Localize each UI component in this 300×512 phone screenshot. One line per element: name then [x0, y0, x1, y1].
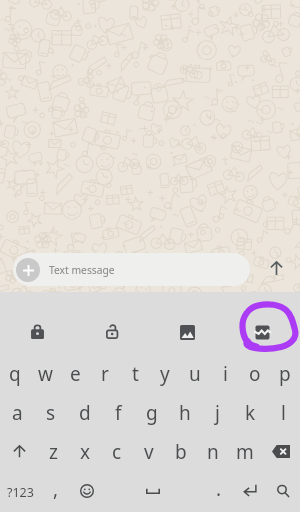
- button[interactable]: p: [270, 354, 300, 393]
- staticText: j: [215, 400, 220, 426]
- button[interactable]: e: [60, 354, 90, 393]
- button[interactable]: b: [165, 432, 197, 471]
- button[interactable]: .: [203, 471, 234, 510]
- staticText: ,: [53, 476, 59, 502]
- button[interactable]: a: [0, 393, 34, 432]
- staticText: k: [245, 400, 256, 426]
- staticText: d: [79, 400, 91, 426]
- button[interactable]: h: [168, 393, 201, 432]
- button[interactable]: g: [135, 393, 168, 432]
- staticText: f: [115, 400, 122, 426]
- button[interactable]: i: [210, 354, 240, 393]
- button[interactable]: Enter: [234, 471, 265, 510]
- button[interactable]: ,: [40, 471, 71, 510]
- staticText: v: [144, 439, 154, 465]
- staticText: b: [175, 439, 187, 465]
- button[interactable]: t: [120, 354, 150, 393]
- staticText: ?123: [7, 484, 34, 501]
- staticText: p: [279, 361, 291, 387]
- staticText: s: [46, 400, 56, 426]
- button[interactable]: n: [197, 432, 229, 471]
- button[interactable]: v: [133, 432, 165, 471]
- button[interactable]: Space: [102, 471, 203, 510]
- button[interactable]: q: [0, 354, 30, 393]
- button[interactable]: Attach: [16, 258, 40, 282]
- staticText: r: [101, 361, 109, 387]
- button[interactable]: Not encrypted: [75, 292, 150, 354]
- staticText: z: [49, 439, 58, 465]
- button[interactable]: u: [180, 354, 210, 393]
- staticText: u: [189, 361, 201, 387]
- button[interactable]: Broken image: [225, 292, 300, 354]
- button[interactable]: x: [69, 432, 101, 471]
- staticText: l: [281, 400, 286, 426]
- staticText: o: [249, 361, 261, 387]
- staticText: .: [216, 476, 222, 502]
- button[interactable]: l: [267, 393, 300, 432]
- button[interactable]: c: [101, 432, 133, 471]
- button[interactable]: m: [229, 432, 261, 471]
- staticText: x: [80, 439, 91, 465]
- staticText: e: [70, 361, 81, 387]
- button[interactable]: f: [102, 393, 135, 432]
- staticText: g: [146, 400, 158, 426]
- staticText: y: [160, 361, 170, 387]
- button[interactable]: d: [68, 393, 102, 432]
- staticText: i: [223, 361, 228, 387]
- button[interactable]: Backspace: [261, 432, 300, 471]
- button[interactable]: j: [201, 393, 234, 432]
- staticText: q: [9, 361, 21, 387]
- button[interactable]: Emoji: [71, 471, 102, 510]
- staticText: Text message: [49, 263, 115, 277]
- button[interactable]: z: [38, 432, 69, 471]
- button[interactable]: Attach: [13, 253, 250, 286]
- button[interactable]: w: [30, 354, 60, 393]
- button[interactable]: Send: [256, 252, 296, 285]
- button[interactable]: s: [34, 393, 68, 432]
- button[interactable]: ?123: [0, 471, 40, 510]
- button[interactable]: Encrypted: [0, 292, 75, 354]
- button[interactable]: Shift: [0, 432, 38, 471]
- staticText: h: [179, 400, 191, 426]
- staticText: t: [132, 361, 139, 387]
- button[interactable]: o: [240, 354, 270, 393]
- button[interactable]: k: [234, 393, 267, 432]
- button[interactable]: r: [90, 354, 120, 393]
- staticText: w: [38, 361, 53, 387]
- button[interactable]: Search: [265, 471, 300, 510]
- staticText: a: [12, 400, 23, 426]
- staticText: n: [207, 439, 219, 465]
- button[interactable]: y: [150, 354, 180, 393]
- staticText: m: [236, 439, 254, 465]
- button[interactable]: Image: [150, 292, 225, 354]
- staticText: c: [112, 439, 122, 465]
